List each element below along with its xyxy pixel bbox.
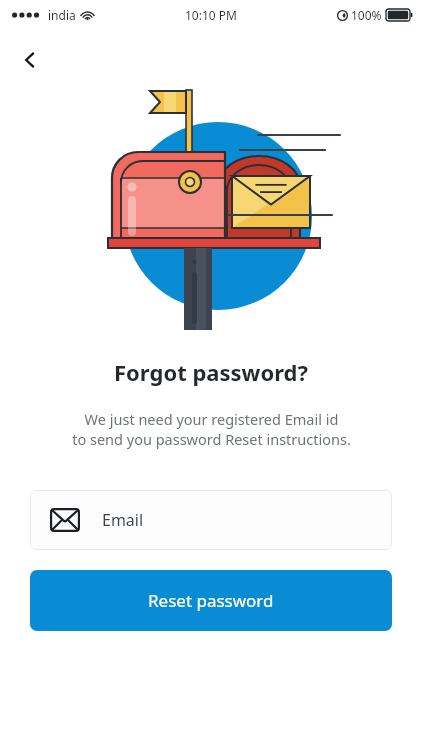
button[interactable]: Back — [10, 40, 50, 80]
button[interactable]: Email — [30, 490, 392, 550]
staticText: 10:10 PM — [185, 7, 237, 23]
staticText: 100% — [351, 7, 382, 23]
staticText: india — [48, 7, 76, 23]
staticText: Email — [102, 509, 144, 531]
staticText: Forgot password? — [114, 357, 308, 387]
staticText: We just need your registered Email id to… — [72, 409, 351, 449]
other: Email — [50, 508, 80, 532]
button[interactable]: Reset password — [30, 570, 392, 631]
staticText: Reset password — [148, 589, 274, 612]
